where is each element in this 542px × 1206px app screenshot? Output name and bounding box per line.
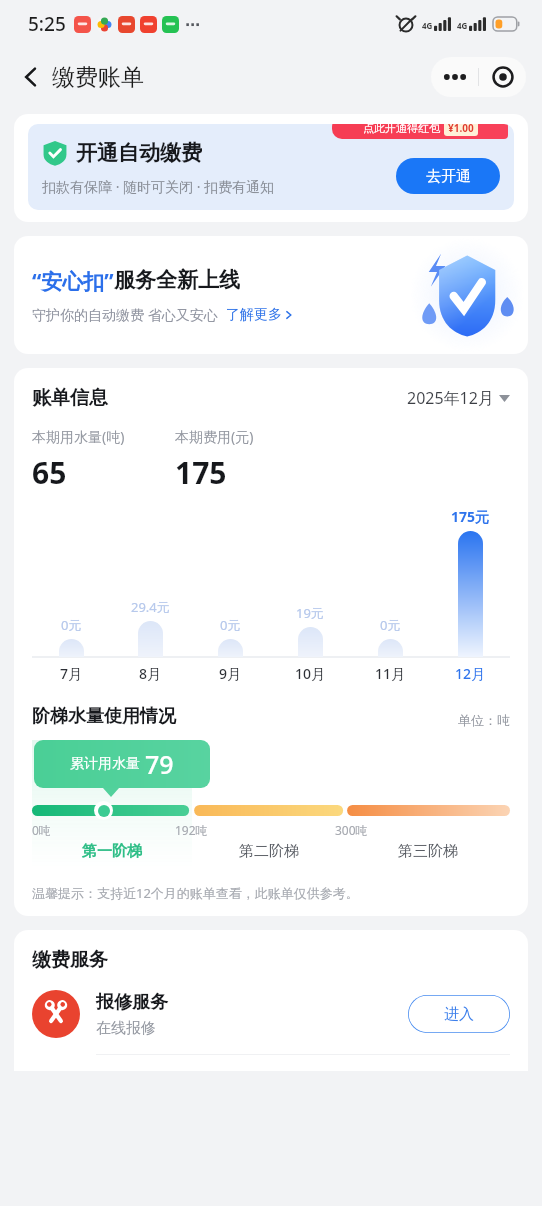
staticText: 报修服务 <box>96 991 168 1014</box>
staticText: 本期费用(元) <box>175 427 254 446</box>
staticText: 4G <box>422 20 433 31</box>
staticText: 8月 <box>139 664 162 683</box>
staticText: 5:25 <box>28 11 66 37</box>
staticText: 了解更多 <box>226 306 282 324</box>
staticText: 缴费服务 <box>32 948 108 972</box>
staticText: 在线报修 <box>96 1019 156 1038</box>
staticText: 第三阶梯 <box>398 842 458 861</box>
staticText: 175元 <box>451 507 490 526</box>
staticText: 守护你的自动缴费 省心又安心 <box>32 305 218 324</box>
staticText: 4G <box>457 20 468 31</box>
button[interactable]: 进入 <box>408 995 510 1033</box>
staticText: 12月 <box>455 664 486 683</box>
staticText: 单位：吨 <box>458 712 510 728</box>
button[interactable]: Back <box>8 54 54 100</box>
button[interactable]: 2025年12月 <box>407 387 510 409</box>
staticText: 阶梯水量使用情况 <box>32 705 176 728</box>
staticText: 缴费账单 <box>52 63 144 92</box>
staticText: 29.4元 <box>131 598 170 616</box>
staticText: 0吨 <box>32 822 51 838</box>
button[interactable]: 去开通 <box>396 158 500 194</box>
staticText: 300吨 <box>335 822 368 838</box>
button[interactable]: More options <box>431 57 478 97</box>
staticText: 扣款有保障 · 随时可关闭 · 扣费有通知 <box>42 177 275 196</box>
staticText: 192吨 <box>175 822 208 838</box>
staticText: 175 <box>175 452 227 493</box>
staticText: 0元 <box>380 616 401 634</box>
staticText: 10月 <box>295 664 326 683</box>
staticText: 点此开通得红包 <box>363 124 440 135</box>
staticText: “安心扣” <box>32 267 114 296</box>
staticText: 7月 <box>60 664 83 683</box>
staticText: 进入 <box>444 1005 474 1024</box>
staticText: 2025年12月 <box>407 387 494 409</box>
staticText: 去开通 <box>426 167 471 186</box>
button[interactable]: 报修服务 <box>32 990 510 1038</box>
staticText: 0元 <box>61 616 82 634</box>
staticText: 第一阶梯 <box>82 842 142 861</box>
button[interactable]: Close <box>479 57 526 97</box>
staticText: 温馨提示：支持近12个月的账单查看，此账单仅供参考。 <box>32 884 359 902</box>
button[interactable]: 点此开通得红包 <box>28 124 514 210</box>
staticText: 账单信息 <box>32 386 108 410</box>
staticText: 19元 <box>296 604 324 622</box>
staticText: 0元 <box>220 616 241 634</box>
staticText: 服务全新上线 <box>114 267 240 293</box>
staticText: 11月 <box>375 664 406 683</box>
staticText: 79 <box>145 747 174 781</box>
staticText: ⋯ <box>185 16 200 33</box>
staticText: 9月 <box>219 664 242 683</box>
button[interactable]: “安心扣” <box>14 236 528 354</box>
staticText: 开通自动缴费 <box>76 140 202 166</box>
staticText: 第二阶梯 <box>239 842 299 861</box>
staticText: ¥1.00 <box>448 124 474 135</box>
staticText: 累计用水量 <box>70 755 140 773</box>
staticText: 本期用水量(吨) <box>32 427 125 446</box>
staticText: 65 <box>32 452 67 493</box>
